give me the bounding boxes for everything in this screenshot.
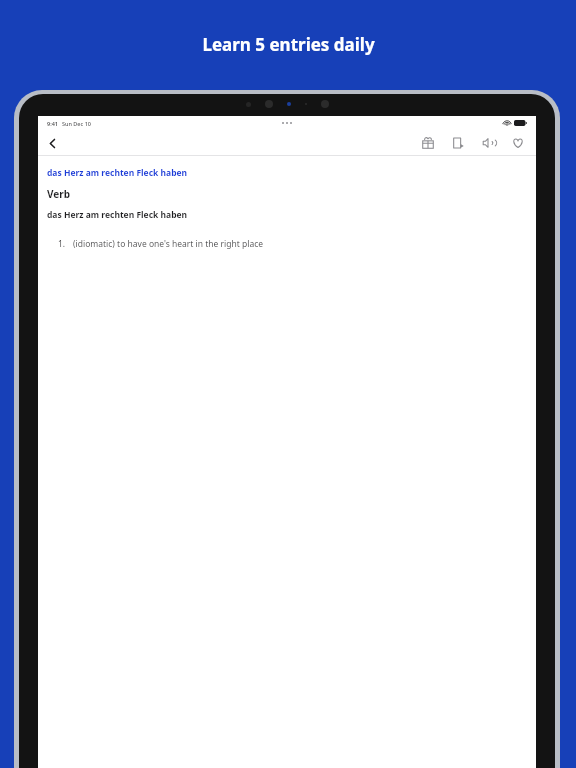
staticText: das Herz am rechten Fleck haben	[47, 167, 188, 179]
staticText: 1.	[58, 238, 66, 250]
staticText: (idiomatic) to have one's heart in the r…	[73, 238, 264, 250]
button[interactable]: Pronounce	[478, 133, 498, 153]
staticText: Learn 5 entries daily	[202, 33, 375, 56]
staticText: 9:41	[47, 120, 58, 127]
staticText: Verb	[47, 187, 71, 201]
staticText: das Herz am rechten Fleck haben	[47, 209, 188, 221]
button[interactable]: Back	[41, 132, 63, 154]
staticText: Sun Dec 10	[62, 120, 91, 127]
button[interactable]: Flashcards	[448, 133, 468, 153]
button[interactable]: Favourite	[508, 133, 528, 153]
button[interactable]: Books	[418, 133, 438, 153]
